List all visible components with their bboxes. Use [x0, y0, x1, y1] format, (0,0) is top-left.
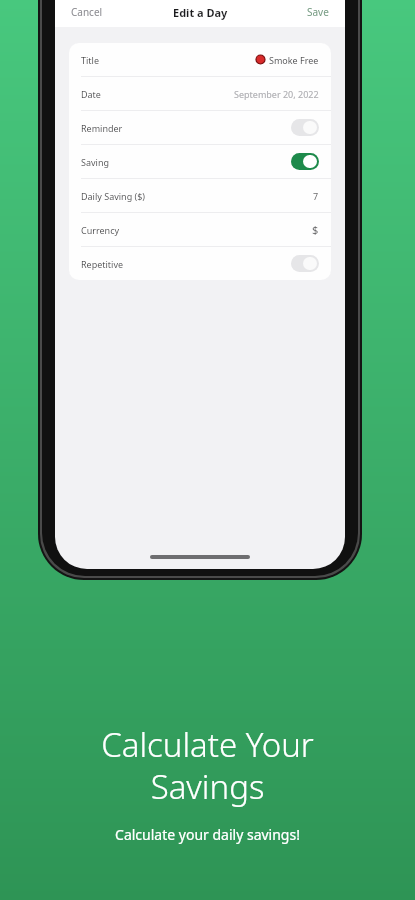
button[interactable]: Cancel [69, 2, 105, 22]
button[interactable]: Reminder [69, 111, 331, 144]
staticText: Save [307, 5, 329, 19]
staticText: Repetitive [81, 258, 124, 270]
button[interactable]: Currency [69, 213, 331, 246]
staticText: Daily Saving ($) [81, 190, 146, 202]
staticText: Date [81, 88, 101, 100]
staticText: Cancel [71, 5, 103, 19]
button[interactable]: Date [69, 77, 331, 110]
staticText: $ [312, 222, 319, 237]
button[interactable]: Repetitive toggle [291, 255, 319, 272]
staticText: Title [81, 54, 99, 66]
button[interactable]: Title [69, 43, 331, 76]
button[interactable]: Saving toggle [291, 153, 319, 170]
staticText: Smoke Free [269, 54, 319, 66]
staticText: 7 [313, 190, 319, 202]
button[interactable]: Save [305, 2, 331, 22]
button[interactable]: Repetitive [69, 247, 331, 280]
staticText: Currency [81, 224, 120, 236]
staticText: Reminder [81, 122, 123, 134]
staticText: September 20, 2022 [234, 88, 319, 100]
staticText: Calculate Your Savings [101, 722, 314, 809]
staticText: Edit a Day [173, 5, 228, 20]
staticText: Calculate your daily savings! [115, 825, 300, 844]
button[interactable]: Reminder toggle [291, 119, 319, 136]
button[interactable]: Saving [69, 145, 331, 178]
button[interactable]: Daily Saving ($) [69, 179, 331, 212]
staticText: Saving [81, 156, 109, 168]
